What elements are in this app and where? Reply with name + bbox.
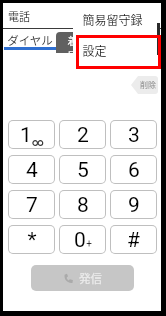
- staticText: 削除: [140, 79, 156, 91]
- staticText: 5: [77, 158, 89, 183]
- button[interactable]: 7: [8, 190, 55, 219]
- staticText: 0: [74, 228, 86, 253]
- staticText: 3: [128, 123, 140, 148]
- staticText: 6: [128, 158, 140, 183]
- button[interactable]: 削除: [131, 76, 158, 94]
- button[interactable]: 簡易留守録: [73, 5, 160, 36]
- button[interactable]: 5: [59, 155, 106, 184]
- button[interactable]: 2: [59, 120, 106, 149]
- button[interactable]: 9: [110, 190, 157, 219]
- button[interactable]: 発信: [31, 265, 134, 291]
- staticText: 2: [77, 123, 89, 148]
- staticText: 簡易留守録: [82, 11, 143, 28]
- button[interactable]: 8: [59, 190, 106, 219]
- staticText: 1: [20, 123, 32, 148]
- staticText: 4: [26, 158, 38, 183]
- staticText: ダイヤル: [7, 32, 53, 49]
- button[interactable]: 3: [110, 120, 157, 149]
- button[interactable]: 1: [8, 120, 55, 149]
- staticText: 設定: [82, 42, 107, 59]
- staticText: 電話: [8, 8, 30, 24]
- button[interactable]: ダイヤル: [4, 31, 56, 49]
- button[interactable]: 4: [8, 155, 55, 184]
- staticText: 7: [26, 193, 38, 218]
- staticText: 8: [77, 193, 89, 218]
- staticText: 9: [128, 193, 140, 218]
- staticText: 発信: [79, 270, 102, 287]
- button[interactable]: *: [8, 225, 55, 254]
- button[interactable]: 設定: [73, 36, 160, 67]
- button[interactable]: 着信履歴: [56, 32, 82, 53]
- button[interactable]: 0: [59, 225, 106, 254]
- button[interactable]: 6: [110, 155, 157, 184]
- staticText: #: [127, 228, 140, 253]
- button[interactable]: #: [110, 225, 157, 254]
- staticText: *: [27, 228, 37, 253]
- staticText: 着信履歴: [65, 33, 82, 53]
- staticText: +: [86, 238, 92, 250]
